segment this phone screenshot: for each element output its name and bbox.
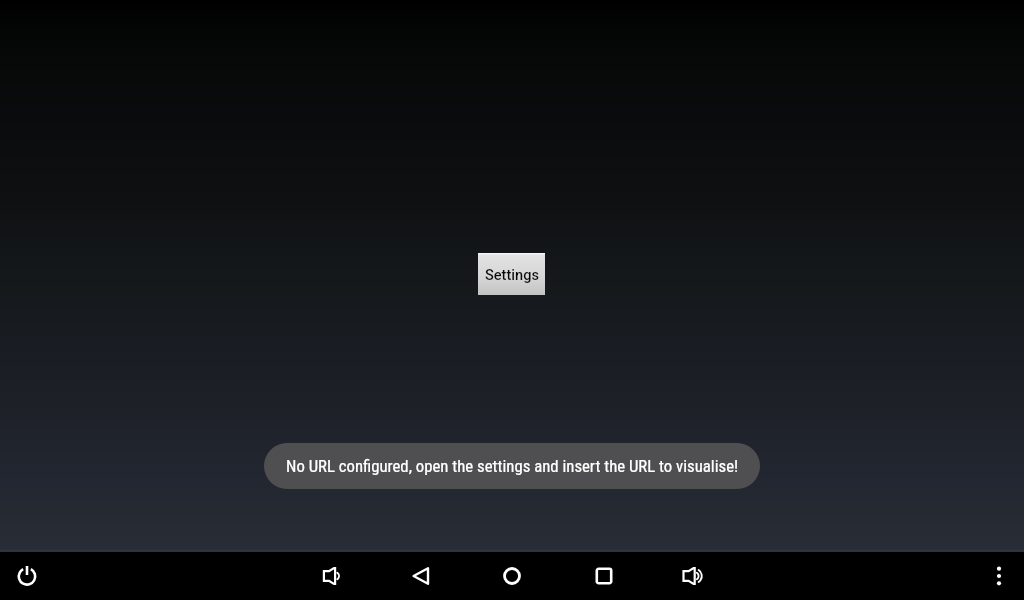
- button[interactable]: More options: [977, 554, 1021, 598]
- button[interactable]: Power: [5, 554, 49, 598]
- button[interactable]: Recent apps: [582, 554, 626, 598]
- staticText: No URL configured, open the settings and…: [286, 456, 739, 476]
- button[interactable]: Back: [399, 554, 443, 598]
- staticText: Settings: [485, 266, 539, 283]
- button[interactable]: Settings: [478, 253, 545, 295]
- button[interactable]: Volume up: [670, 554, 714, 598]
- button[interactable]: Home: [490, 554, 534, 598]
- button[interactable]: Volume down: [309, 554, 353, 598]
